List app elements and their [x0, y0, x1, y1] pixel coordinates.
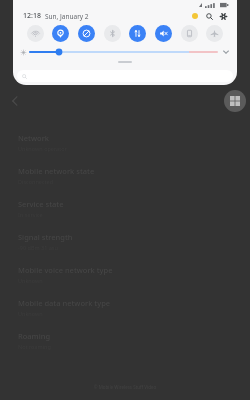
staticText: Signal strength: [18, 232, 73, 242]
staticText: Sun, January 2: [45, 12, 89, 21]
button[interactable]: BLUETOOTH: [104, 25, 121, 42]
staticText: Mobile voice network type: [18, 265, 113, 275]
staticText: Roaming: [18, 331, 51, 341]
button[interactable]: NOSOUND: [78, 25, 95, 42]
staticText: 12:18: [23, 11, 41, 21]
button[interactable]: ROTATE: [181, 25, 198, 42]
button[interactable]: AIRPLANE: [206, 25, 223, 42]
button[interactable]: Brightness: [189, 10, 201, 22]
staticText: Service state: [18, 199, 64, 209]
button[interactable]: App windows: [224, 90, 246, 112]
staticText: Mobile network state: [18, 166, 95, 176]
button[interactable]: MUTE: [155, 25, 172, 42]
button[interactable]: WIFI: [27, 25, 44, 42]
button[interactable]: Expand: [221, 47, 231, 57]
staticText: Network: [18, 133, 49, 143]
button[interactable]: LOCATION: [52, 25, 69, 42]
button[interactable]: DATA: [129, 25, 146, 42]
button[interactable]: Brightness slider: [30, 47, 217, 57]
button[interactable]: Search: [203, 10, 215, 22]
staticText: Mobile data network type: [18, 298, 111, 308]
button[interactable]: Settings: [217, 10, 229, 22]
